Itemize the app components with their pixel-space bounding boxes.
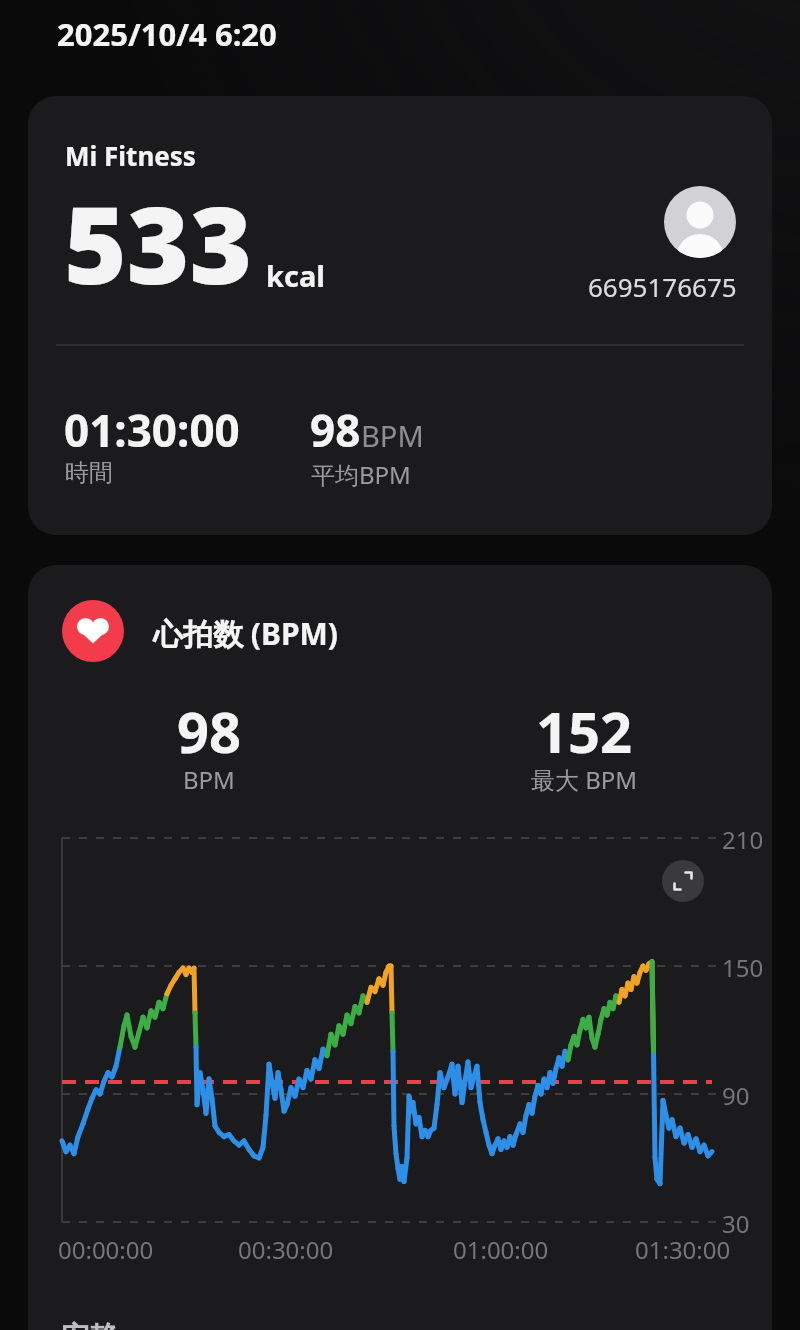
staticText: 152 [536,693,633,769]
staticText: 90 [722,1079,750,1112]
staticText: 01:30:00 [64,400,240,460]
staticText: 時間 [65,458,113,488]
staticText: 01:30:00 [635,1233,731,1266]
staticText: 150 [722,951,764,984]
button[interactable] [662,860,704,902]
staticText: 最大 BPM [531,763,638,796]
staticText: kcal [266,256,325,295]
button[interactable]: Mi Fitness [28,96,772,535]
staticText: 安静 [61,1319,119,1330]
staticText: 2025/10/4 6:20 [57,13,277,55]
staticText: BPM [361,416,424,455]
staticText: 533 [64,170,253,316]
staticText: 01:00:00 [453,1233,549,1266]
staticText: 210 [722,823,764,856]
staticText: 心拍数 (BPM) [153,613,339,654]
staticText: Mi Fitness [65,138,196,173]
staticText: 00:00:00 [58,1233,154,1266]
staticText: BPM [183,763,235,796]
staticText: 98 [310,400,361,460]
staticText: 6695176675 [588,269,737,304]
button[interactable]: 心拍数 (BPM) [28,565,772,1330]
staticText: 30 [722,1207,750,1240]
staticText: 平均BPM [311,458,411,491]
staticText: 98 [177,693,242,769]
staticText: 00:30:00 [238,1233,334,1266]
